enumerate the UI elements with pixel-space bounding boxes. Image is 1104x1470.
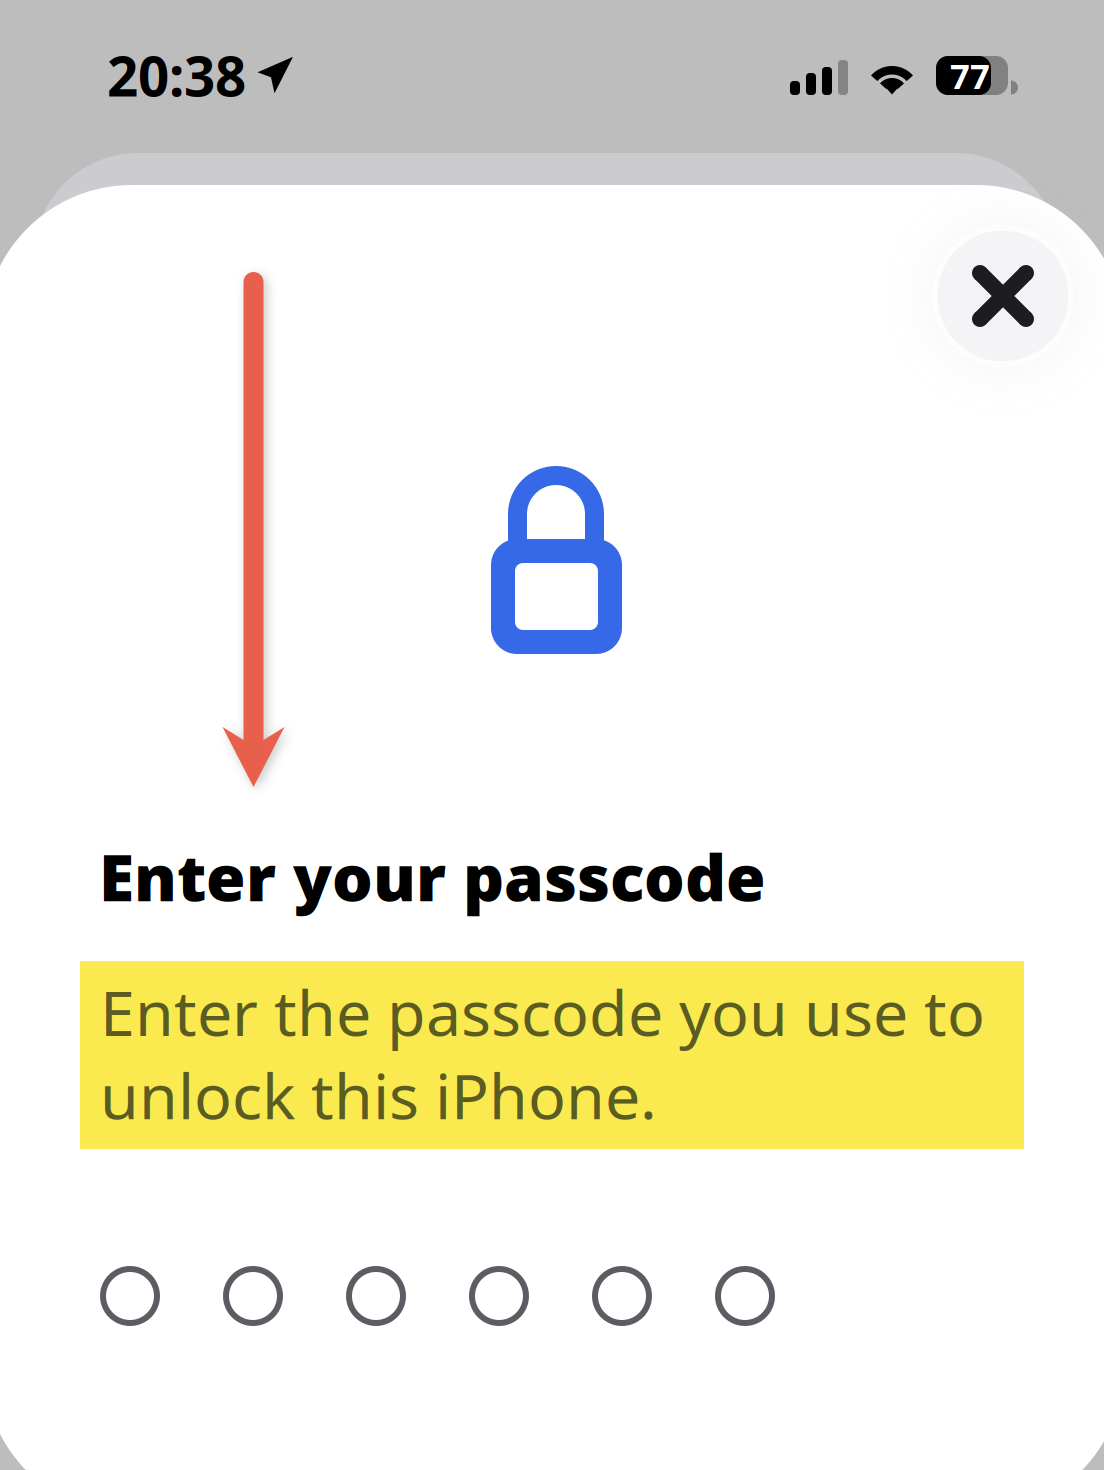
button[interactable]: Close	[848, 141, 1104, 451]
staticText: Enter the passcode you use to unlock thi…	[100, 970, 985, 1136]
button[interactable]: Passcode	[100, 1266, 775, 1326]
staticText: 77	[950, 52, 990, 98]
staticText: Enter your passcode	[99, 834, 766, 919]
staticText: 20:38	[107, 39, 246, 112]
